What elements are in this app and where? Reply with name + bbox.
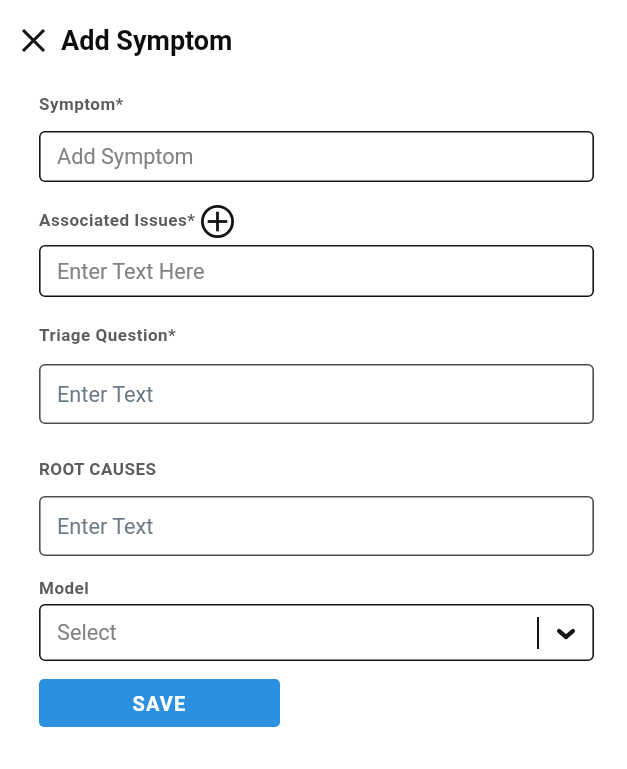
- staticText: Symptom*: [39, 94, 124, 114]
- staticText: Triage Question*: [39, 325, 177, 345]
- button[interactable]: Enter Text Here: [39, 245, 594, 297]
- staticText: Enter Text: [57, 382, 154, 407]
- staticText: Select: [57, 620, 117, 645]
- staticText: ROOT CAUSES: [39, 459, 157, 479]
- staticText: Enter Text: [57, 514, 154, 539]
- button[interactable]: Enter Text: [39, 496, 594, 556]
- button[interactable]: SAVE: [39, 679, 280, 727]
- staticText: SAVE: [132, 692, 187, 715]
- button[interactable]: Close: [13, 20, 54, 61]
- button[interactable]: Add associated issue: [200, 204, 235, 239]
- staticText: Model: [39, 578, 90, 598]
- staticText: Associated Issues*: [39, 210, 196, 230]
- button[interactable]: Add Symptom: [39, 131, 594, 182]
- button[interactable]: Enter Text: [39, 364, 594, 424]
- staticText: Enter Text Here: [57, 259, 205, 284]
- staticText: Add Symptom: [57, 144, 194, 169]
- button[interactable]: Select: [39, 604, 594, 661]
- staticText: Add Symptom: [61, 25, 233, 57]
